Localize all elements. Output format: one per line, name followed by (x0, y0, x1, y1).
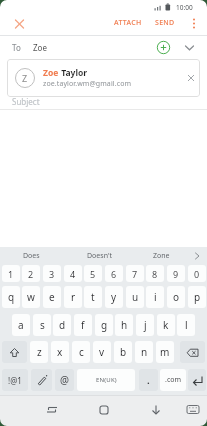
button[interactable]: i (146, 286, 164, 308)
button[interactable] (182, 40, 197, 55)
button[interactable]: EN(UK) (77, 369, 135, 391)
staticText: d (59, 318, 66, 332)
button[interactable]: z (30, 341, 48, 363)
button[interactable]: 4 (64, 265, 82, 282)
staticText: i (154, 290, 157, 304)
button[interactable]: d (53, 314, 71, 336)
staticText: zoe.taylor.wm@gmail.com (43, 79, 132, 89)
button[interactable]: o (167, 286, 185, 308)
button[interactable]: 1 (2, 265, 20, 282)
button[interactable]: g (95, 314, 113, 336)
button[interactable]: f (74, 314, 92, 336)
button[interactable]: c (72, 341, 90, 363)
button[interactable]: 5 (84, 265, 102, 282)
button[interactable]: v (93, 341, 111, 363)
button[interactable] (93, 399, 115, 421)
button[interactable]: Z (7, 59, 200, 97)
button[interactable]: q (2, 286, 20, 308)
button[interactable] (2, 341, 27, 363)
button[interactable] (180, 341, 205, 363)
staticText: 8 (152, 268, 158, 280)
staticText: Does (23, 251, 40, 261)
button[interactable] (31, 369, 52, 391)
staticText: r (71, 290, 76, 304)
button[interactable]: a (12, 314, 30, 336)
button[interactable]: k (157, 314, 175, 336)
staticText: a (18, 318, 24, 332)
staticText: Zone (153, 251, 170, 261)
staticText: 7 (132, 268, 138, 280)
staticText: Zoe (43, 67, 59, 79)
staticText: s (40, 318, 45, 332)
button[interactable]: 6 (105, 265, 123, 282)
button[interactable] (188, 369, 206, 391)
staticText: 2 (28, 268, 34, 280)
staticText: o (173, 290, 180, 304)
staticText: 1 (8, 268, 14, 280)
staticText: . (147, 374, 150, 387)
button[interactable]: t (84, 286, 102, 308)
staticText: Doesn't (87, 251, 113, 261)
button[interactable]: Does (6, 247, 56, 265)
staticText: ATTACH (114, 18, 142, 28)
staticText: EN(UK) (96, 376, 117, 384)
button[interactable]: 2 (22, 265, 40, 282)
staticText: z (37, 345, 42, 359)
button[interactable]: 0 (188, 265, 206, 282)
staticText: 6 (111, 268, 117, 280)
button[interactable]: ATTACH (114, 16, 142, 30)
staticText: n (141, 345, 148, 359)
staticText: 4 (70, 268, 76, 280)
staticText: 9 (173, 268, 179, 280)
button[interactable]: 3 (43, 265, 61, 282)
staticText: 0 (194, 268, 200, 280)
button[interactable]: 9 (167, 265, 185, 282)
staticText: @ (60, 373, 69, 387)
button[interactable]: l (177, 314, 195, 336)
button[interactable]: m (156, 341, 174, 363)
button[interactable]: w (22, 286, 40, 308)
button[interactable] (155, 39, 172, 56)
button[interactable]: r (64, 286, 82, 308)
button[interactable]: SEND (155, 16, 175, 30)
button[interactable]: Doesn't (75, 247, 125, 265)
staticText: l (185, 318, 188, 332)
button[interactable]: .com (160, 369, 186, 391)
button[interactable] (10, 15, 30, 33)
staticText: To (12, 42, 21, 53)
button[interactable] (183, 399, 203, 419)
button[interactable]: b (114, 341, 132, 363)
staticText: x (57, 345, 63, 359)
button[interactable]: 7 (126, 265, 144, 282)
staticText: k (163, 318, 169, 332)
button[interactable]: . (139, 369, 158, 391)
staticText: c (79, 345, 84, 359)
staticText: .com (165, 375, 182, 385)
staticText: f (81, 318, 85, 332)
button[interactable]: e (43, 286, 61, 308)
button[interactable]: h (115, 314, 133, 336)
staticText: 5 (90, 268, 96, 280)
button[interactable] (188, 15, 200, 31)
button[interactable]: !@1 (2, 369, 28, 391)
staticText: q (8, 290, 15, 304)
button[interactable] (183, 70, 199, 86)
staticText: j (144, 318, 147, 332)
staticText: SEND (155, 18, 175, 28)
button[interactable]: Zone (136, 247, 186, 265)
staticText: g (101, 318, 108, 332)
button[interactable]: j (136, 314, 154, 336)
button[interactable]: 8 (146, 265, 164, 282)
button[interactable] (145, 399, 167, 421)
button[interactable]: @ (55, 369, 74, 391)
staticText: h (121, 318, 128, 332)
staticText: 10:00 (176, 3, 193, 12)
button[interactable]: u (126, 286, 144, 308)
button[interactable] (41, 399, 63, 421)
button[interactable]: p (188, 286, 206, 308)
button[interactable]: y (105, 286, 123, 308)
button[interactable]: x (51, 341, 69, 363)
staticText: Subject (12, 96, 40, 107)
button[interactable]: n (135, 341, 153, 363)
button[interactable]: s (33, 314, 51, 336)
